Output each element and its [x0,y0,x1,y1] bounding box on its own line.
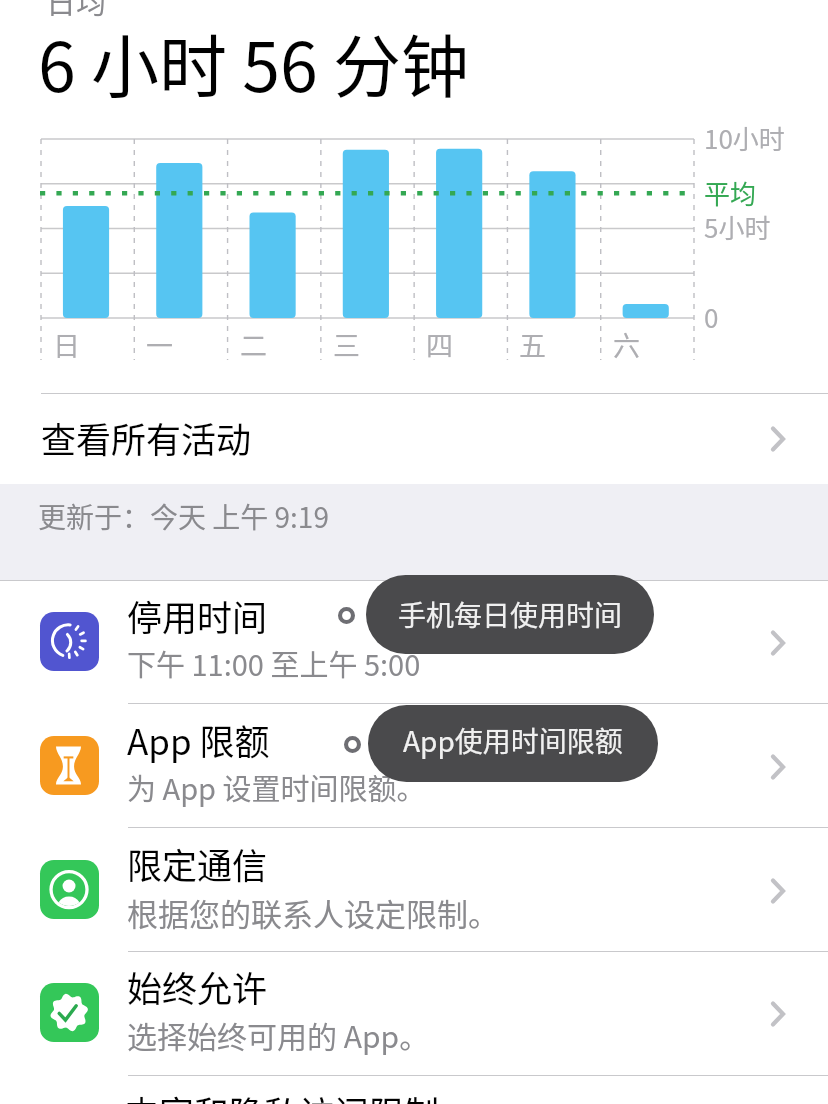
staticText: 始终允许 [127,961,268,1012]
button[interactable]: App 限额 [0,705,828,828]
staticText: 五 [519,325,546,364]
other: Info [338,607,355,624]
button[interactable]: 手机每日使用时间 [366,575,654,654]
staticText: 二 [240,325,267,364]
button[interactable]: App使用时间限额 [368,705,658,782]
staticText: 日均 [46,0,106,21]
staticText: 三 [333,325,360,364]
staticText: 平均 [704,174,757,212]
staticText: 下午 11:00 至上午 5:00 [127,642,421,684]
other: Info [344,736,361,753]
button[interactable]: 限定通信 [0,829,828,952]
staticText: 根据您的联系人设定限制。 [127,890,499,935]
staticText: App使用时间限额 [403,720,623,761]
staticText: 5小时 [704,208,771,246]
button[interactable]: 查看所有活动 [0,394,828,484]
button[interactable]: 停用时间 [0,581,828,704]
staticText: 查看所有活动 [41,412,252,463]
staticText: 日 [53,325,80,364]
staticText: 更新于：今天 上午 9:19 [38,496,329,537]
staticText: 一 [146,325,173,364]
staticText: 停用时间 [127,590,268,641]
staticText: 六 [613,325,640,364]
button[interactable]: 始终允许 [0,952,828,1075]
staticText: 6 小时 56 分钟 [38,13,469,111]
staticText: 内容和隐私访问限制 [124,1086,440,1104]
staticText: 限定通信 [127,838,268,889]
staticText: 0 [704,298,719,336]
staticText: 四 [426,325,453,364]
staticText: 10小时 [704,119,785,157]
staticText: App 限额 [127,714,270,765]
staticText: 手机每日使用时间 [398,594,623,635]
staticText: 选择始终可用的 App。 [127,1013,430,1056]
staticText: 为 App 设置时间限额。 [127,766,426,808]
